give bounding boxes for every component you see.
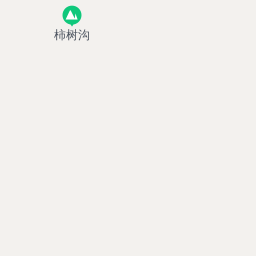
button[interactable]: 柿树沟 [54,6,90,42]
staticText: 柿树沟 [54,28,90,42]
